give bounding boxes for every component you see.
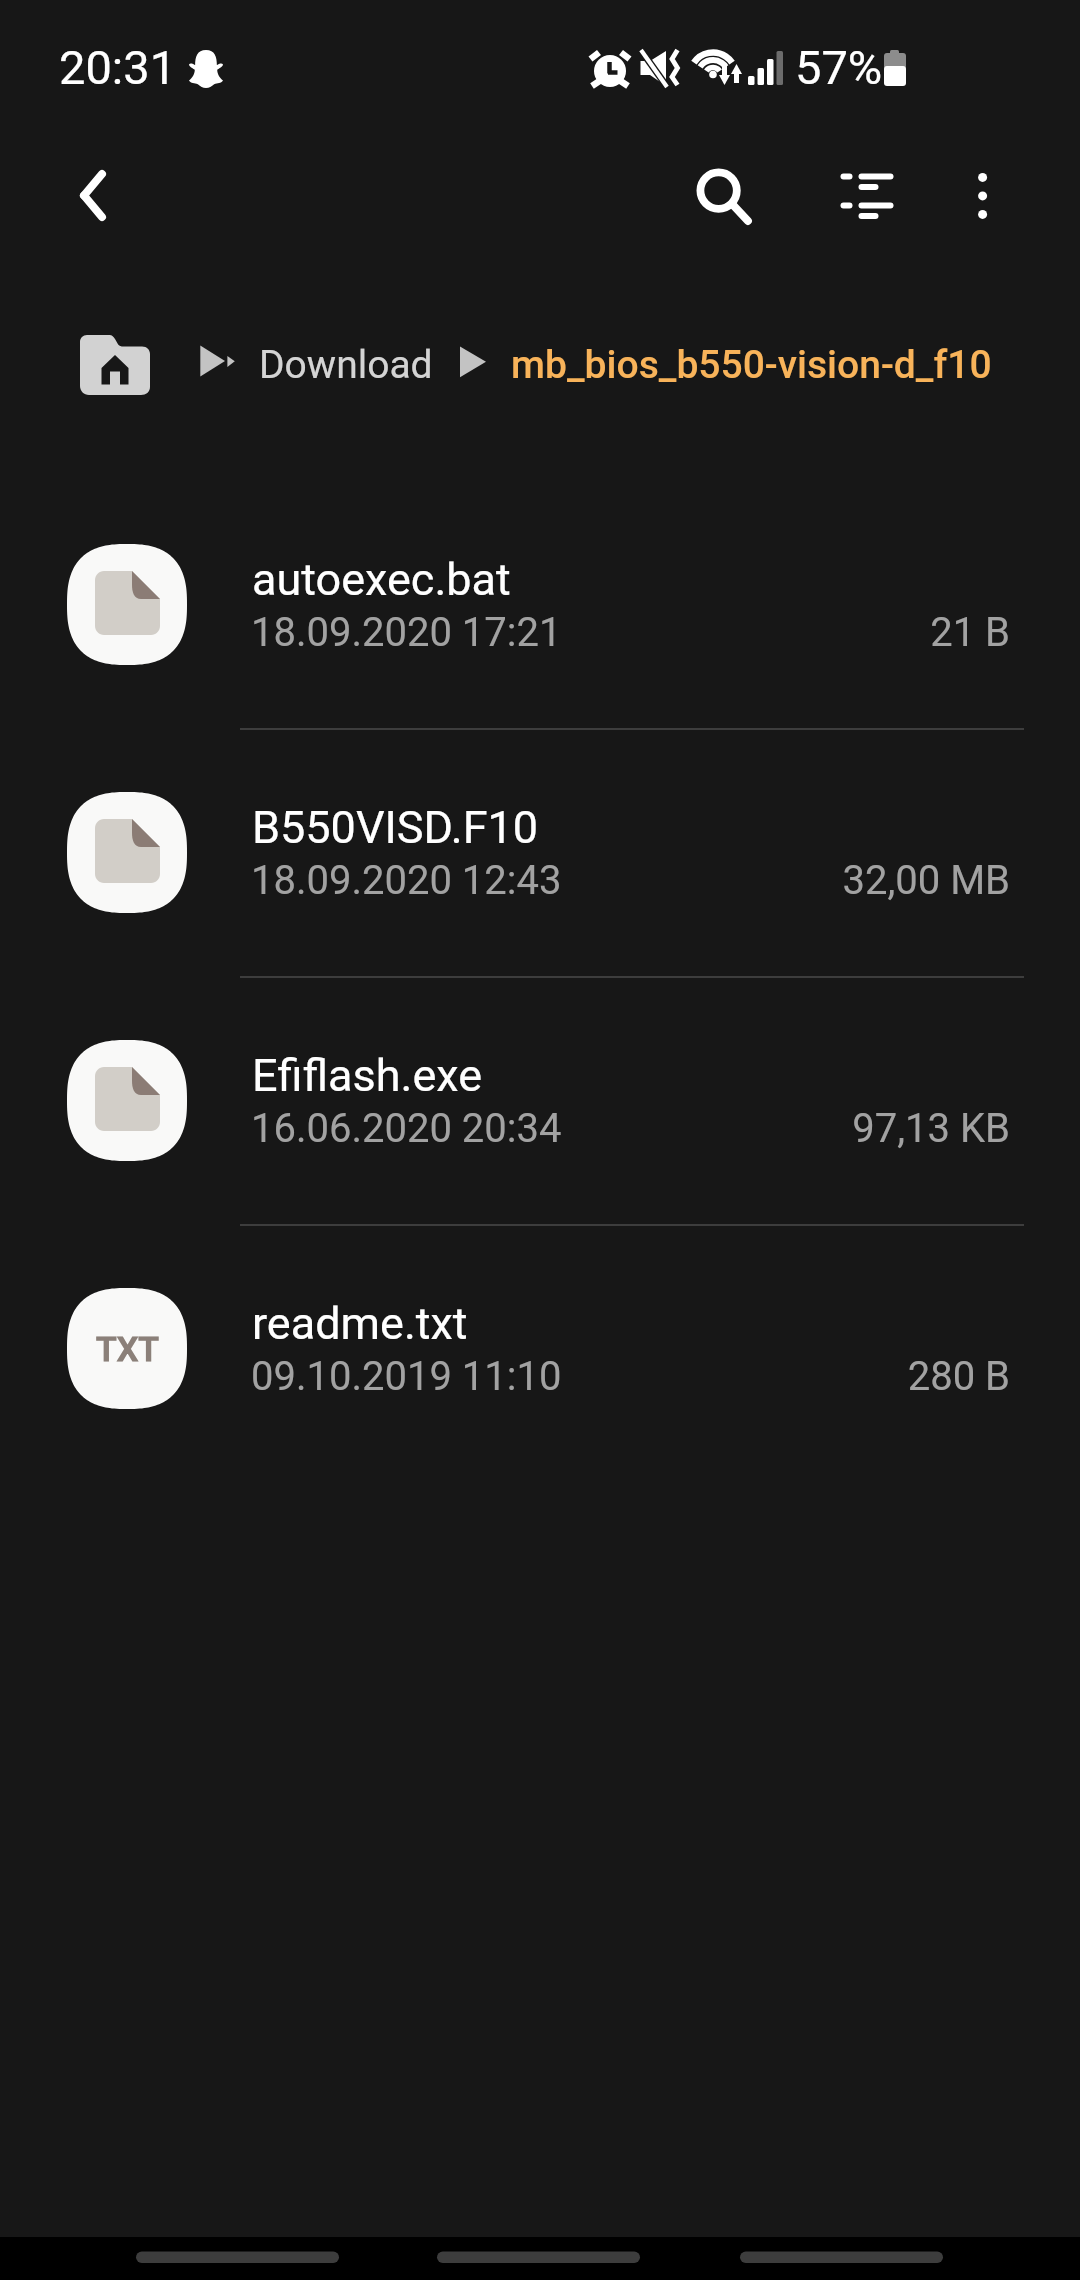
staticText: 20:31 <box>59 40 177 95</box>
button[interactable]: Download <box>251 325 441 397</box>
button[interactable]: B550VISD.F10 <box>0 728 1080 976</box>
staticText: 97,13 KB <box>0 1105 1010 1152</box>
staticText: 57% <box>795 40 883 95</box>
button[interactable]: Sort <box>814 142 918 246</box>
staticText: autoexec.bat <box>252 553 511 606</box>
staticText: 32,00 MB <box>0 857 1010 904</box>
button[interactable]: Search <box>670 142 774 246</box>
staticText: 280 B <box>0 1353 1010 1400</box>
button[interactable]: Efiflash.exe <box>0 976 1080 1224</box>
staticText: readme.txt <box>252 1297 468 1350</box>
staticText: 18.09.2020 17:21 <box>251 609 562 656</box>
staticText: 21 B <box>0 609 1010 656</box>
staticText: mb_bios_b550-vision-d_f10 <box>511 342 992 388</box>
staticText: TXT <box>96 1329 159 1369</box>
button[interactable]: Back <box>26 142 134 250</box>
button[interactable]: autoexec.bat <box>0 480 1080 728</box>
button[interactable]: TXT <box>0 1224 1080 1472</box>
staticText: 16.06.2020 20:34 <box>251 1105 562 1152</box>
staticText: Efiflash.exe <box>252 1049 483 1102</box>
staticText: 09.10.2019 11:10 <box>251 1353 562 1400</box>
button[interactable]: mb_bios_b550-vision-d_f10 <box>503 325 1003 397</box>
button[interactable]: Home <box>68 323 162 407</box>
button[interactable]: More options <box>930 142 1034 246</box>
staticText: B550VISD.F10 <box>252 801 539 854</box>
staticText: 18.09.2020 12:43 <box>251 857 562 904</box>
staticText: Download <box>259 342 433 388</box>
